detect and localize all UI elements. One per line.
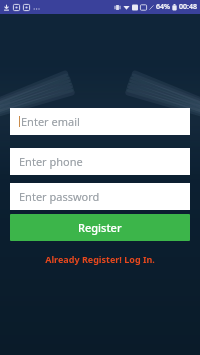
button[interactable]: Enter email — [10, 108, 190, 135]
button[interactable]: Enter password — [10, 183, 190, 210]
staticText: 64% — [156, 2, 170, 12]
button[interactable]: Enter phone — [10, 148, 190, 175]
staticText: Enter password — [19, 189, 100, 204]
staticText: Already Register! Log In. — [45, 253, 155, 265]
staticText: Enter email — [21, 114, 80, 129]
staticText: 00:48 — [179, 2, 197, 12]
staticText: Enter phone — [19, 154, 83, 169]
button[interactable]: Already Register! Log In. — [10, 251, 190, 267]
button[interactable]: Register — [10, 214, 190, 241]
staticText: Register — [78, 220, 122, 235]
